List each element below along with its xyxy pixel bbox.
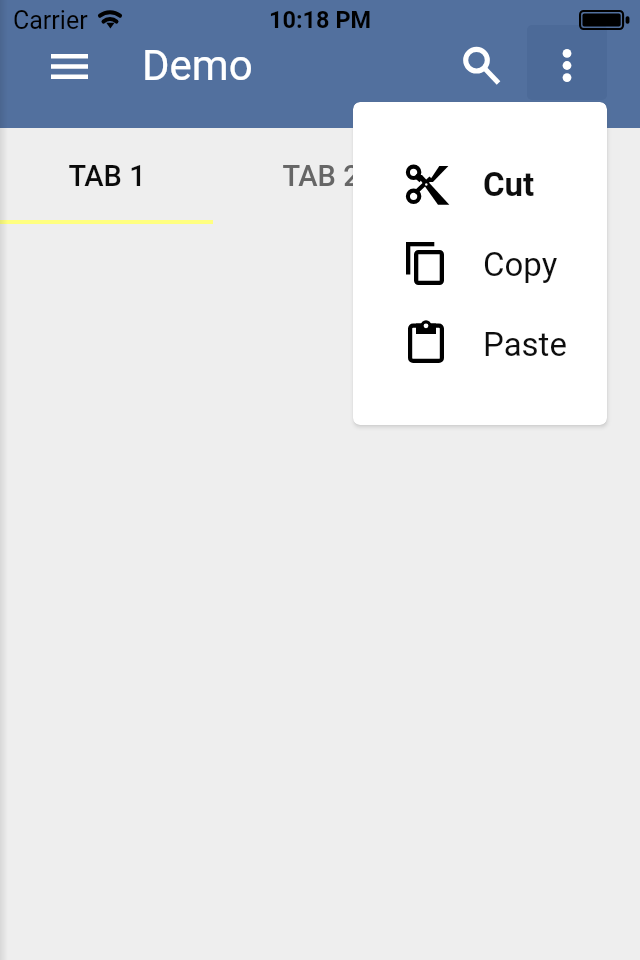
staticText: Demo [142,41,253,90]
button[interactable]: TAB 2 [214,128,427,224]
staticText: TAB 1 [68,159,146,193]
staticText: Carrier [13,6,88,35]
button[interactable]: Search [444,27,519,103]
button[interactable]: Open navigation drawer [27,28,112,104]
button[interactable]: Cut [353,144,607,224]
staticText: TAB 3 [495,159,573,193]
staticText: TAB 2 [282,159,360,193]
button[interactable]: Paste [353,304,607,384]
staticText: Cut [483,165,535,204]
staticText: Copy [483,245,558,284]
button[interactable]: Copy [353,224,607,304]
button[interactable]: More options [527,25,607,100]
staticText: Paste [483,325,567,364]
button[interactable]: TAB 3 [427,128,640,224]
button[interactable]: TAB 1 [0,128,214,224]
staticText: 10:18 PM [269,6,372,34]
